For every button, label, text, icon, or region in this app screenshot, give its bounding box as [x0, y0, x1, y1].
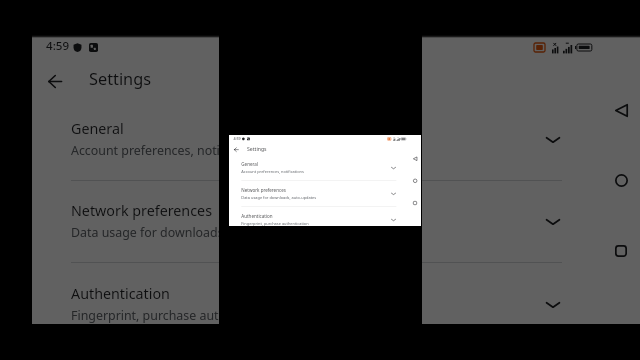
staticText: General: [241, 161, 258, 167]
staticText: Fingerprint, purchase authentication: [241, 221, 309, 226]
button[interactable]: Authentication: [32, 264, 598, 346]
button[interactable]: Network preferences: [32, 181, 598, 263]
staticText: Data usage for downloads, auto-updates: [71, 224, 308, 241]
staticText: Fingerprint, purchase authentication: [71, 307, 285, 324]
staticText: Account preferences, notifications: [71, 142, 269, 159]
button[interactable]: Network preferences: [229, 181, 408, 207]
staticText: Data usage for downloads, auto-updates: [241, 194, 316, 200]
staticText: Settings: [247, 145, 267, 152]
button[interactable]: Home: [409, 175, 421, 186]
staticText: 4:59: [233, 136, 241, 141]
button[interactable]: Navigate up: [37, 63, 73, 99]
staticText: Authentication: [71, 284, 170, 303]
staticText: General: [71, 119, 124, 138]
button[interactable]: Back: [603, 92, 639, 128]
button[interactable]: General: [229, 155, 408, 181]
staticText: Authentication: [241, 213, 273, 219]
button[interactable]: General: [32, 99, 598, 181]
button[interactable]: Recent apps: [603, 233, 639, 269]
button[interactable]: Home: [603, 162, 639, 198]
button[interactable]: Recent apps: [409, 197, 421, 209]
staticText: Settings: [89, 68, 152, 90]
button[interactable]: Navigate up: [231, 144, 242, 155]
staticText: Account preferences, notifications: [241, 169, 304, 174]
button[interactable]: Authentication: [229, 207, 408, 226]
staticText: Network preferences: [71, 201, 212, 220]
button[interactable]: Back: [409, 153, 421, 164]
staticText: 4:59: [46, 38, 70, 54]
staticText: Network preferences: [241, 187, 286, 193]
